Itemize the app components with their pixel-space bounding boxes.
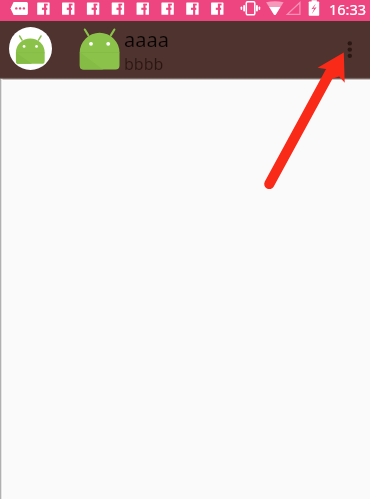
staticText: aaaa: [124, 26, 169, 53]
staticText: 16:33: [329, 0, 367, 19]
button[interactable]: Open navigation drawer: [9, 27, 52, 70]
staticText: bbbb: [124, 53, 164, 75]
button[interactable]: More options: [328, 21, 370, 77]
